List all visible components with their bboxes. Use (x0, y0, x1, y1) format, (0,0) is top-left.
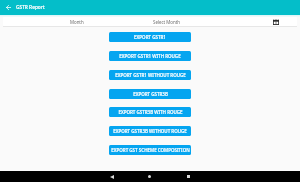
staticText: EXPORT GSTR1 WITHOUT ROUGE (115, 72, 186, 78)
button[interactable]: EXPORT GSTR1 WITHOUT ROUGE (109, 70, 191, 80)
button[interactable]: Back (106, 171, 118, 182)
staticText: GSTR Report (16, 4, 45, 11)
button[interactable]: Home (143, 171, 155, 182)
staticText: Month (70, 19, 84, 25)
button[interactable]: Back (0, 0, 16, 15)
button[interactable]: EXPORT GSTR3B WITHOUT ROUGE (109, 126, 191, 136)
staticText: EXPORT GST SCHEME COMPOSITION (111, 147, 190, 153)
staticText: Select Month (153, 19, 180, 25)
staticText: EXPORT GSTR3B WITH ROUGE (118, 109, 183, 115)
button[interactable]: Recent apps (182, 171, 194, 182)
button[interactable]: Select Month (150, 17, 297, 26)
button[interactable]: EXPORT GST SCHEME COMPOSITION (109, 145, 191, 155)
button[interactable]: EXPORT GSTR1 WITH ROUGE (109, 51, 191, 61)
button[interactable]: Month (3, 17, 150, 26)
button[interactable]: EXPORT GSTR1 (109, 32, 191, 42)
staticText: EXPORT GSTR3B WITHOUT ROUGE (113, 128, 187, 134)
button[interactable]: EXPORT GSTR3B (109, 89, 191, 99)
button[interactable]: EXPORT GSTR3B WITH ROUGE (109, 107, 191, 117)
staticText: EXPORT GSTR1 (134, 34, 166, 40)
staticText: EXPORT GSTR3B (133, 91, 168, 97)
staticText: EXPORT GSTR1 WITH ROUGE (119, 53, 181, 59)
